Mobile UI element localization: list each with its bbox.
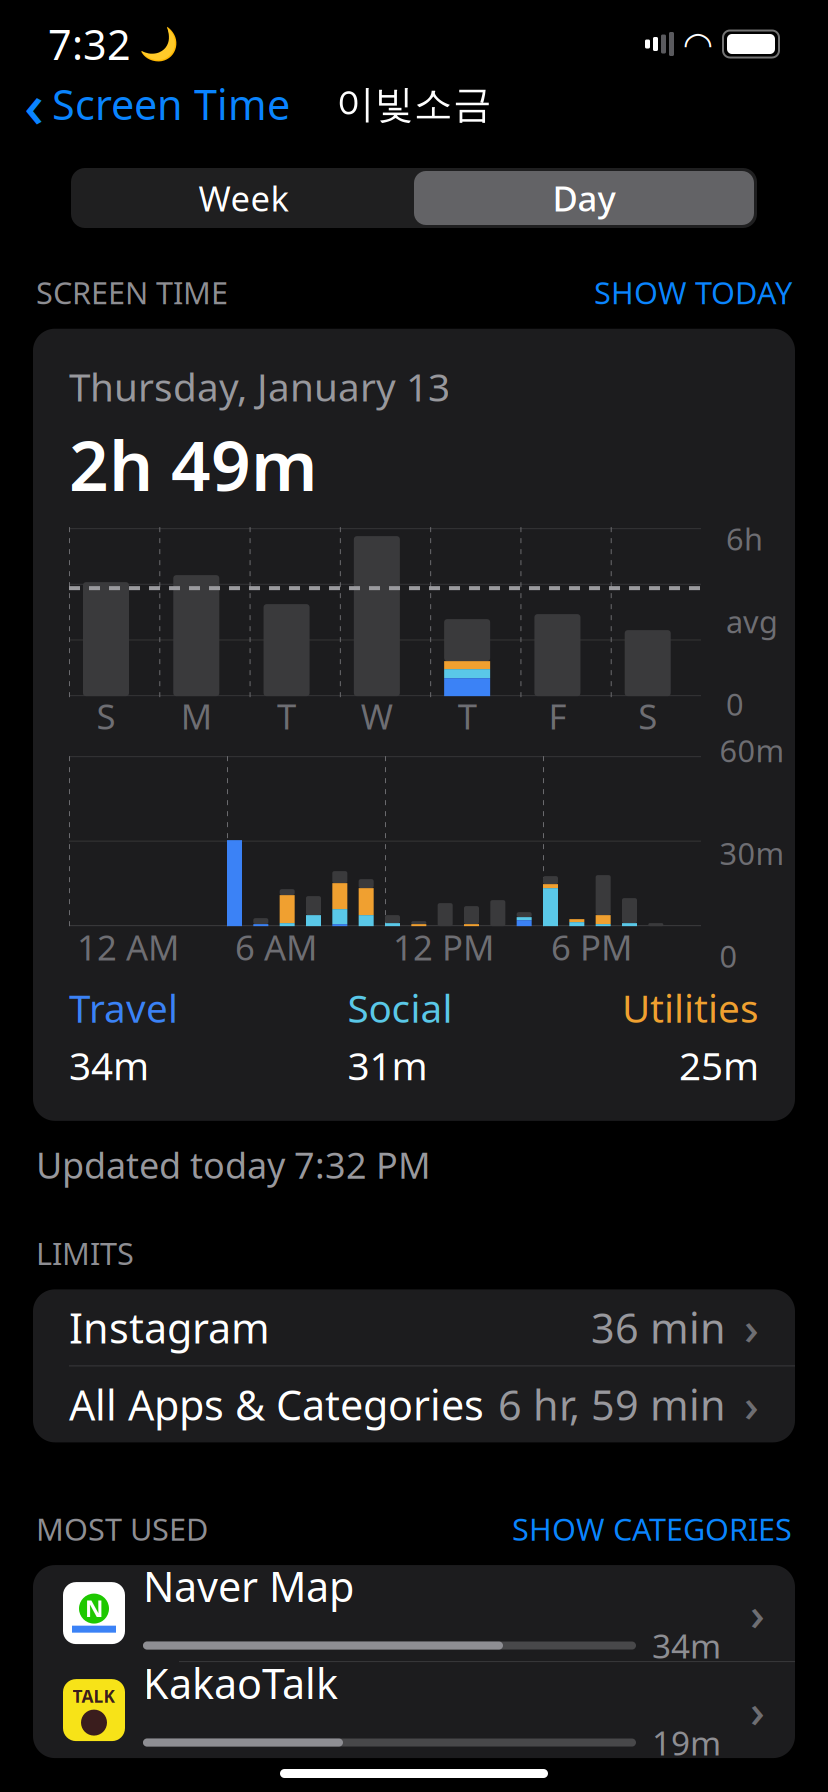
staticText: 25m — [679, 1039, 759, 1091]
staticText: 6 AM — [235, 924, 317, 970]
staticText: Screen Time — [52, 77, 290, 131]
staticText: 6 hr, 59 min — [498, 1377, 726, 1432]
button[interactable]: SHOW CATEGORIES — [512, 1508, 792, 1549]
staticText: 34m — [652, 1623, 721, 1668]
staticText: ‹ — [24, 63, 44, 145]
staticText: 이빛소금 — [336, 80, 492, 128]
button[interactable]: Day — [414, 171, 754, 225]
button[interactable]: SHOW TODAY — [594, 272, 792, 313]
staticText: 12 AM — [77, 924, 179, 970]
staticText: TALK — [72, 1685, 115, 1708]
staticText: All Apps & Categories — [69, 1377, 484, 1432]
staticText: 6 PM — [551, 924, 632, 970]
button[interactable]: All Apps & Categories — [33, 1366, 795, 1442]
staticText: › — [744, 1297, 759, 1357]
staticText: Updated today 7:32 PM — [36, 1141, 431, 1189]
staticText: T — [277, 693, 296, 739]
staticText: Day — [552, 175, 615, 221]
staticText: Thursday, January 13 — [69, 361, 450, 412]
staticText: 0 — [726, 684, 744, 724]
staticText: 30m — [719, 833, 784, 873]
staticText: avg — [726, 601, 778, 642]
staticText: LIMITS — [36, 1233, 134, 1273]
button[interactable]: Week — [74, 171, 414, 225]
staticText: 0 — [719, 935, 737, 976]
staticText: Naver Map — [143, 1558, 354, 1613]
staticText: F — [548, 693, 566, 739]
staticText: S — [638, 693, 657, 739]
staticText: SHOW TODAY — [594, 272, 792, 313]
staticText: ◠ — [684, 24, 711, 64]
staticText: 6h — [726, 518, 763, 559]
staticText: 34m — [69, 1039, 149, 1091]
staticText: N — [85, 1593, 103, 1624]
staticText: 2h 49m — [69, 418, 318, 510]
staticText: S — [96, 693, 115, 739]
staticText: W — [361, 693, 393, 739]
button[interactable]: N — [33, 1565, 795, 1661]
button[interactable]: TALK — [33, 1662, 795, 1758]
staticText: 12 PM — [393, 924, 494, 970]
staticText: Social — [347, 982, 452, 1033]
staticText: 31m — [347, 1039, 427, 1091]
staticText: › — [750, 1583, 765, 1643]
staticText: Instagram — [69, 1300, 270, 1355]
button[interactable]: Instagram — [33, 1289, 795, 1365]
staticText: Utilities — [622, 982, 759, 1033]
staticText: KakaoTalk — [143, 1655, 338, 1710]
staticText: › — [744, 1374, 759, 1434]
staticText: SCREEN TIME — [36, 272, 228, 313]
staticText: SHOW CATEGORIES — [512, 1508, 792, 1549]
staticText: M — [181, 693, 212, 739]
staticText: 7:32 — [48, 17, 131, 71]
staticText: › — [750, 1680, 765, 1740]
staticText: 60m — [719, 730, 784, 771]
staticText: Week — [198, 175, 289, 221]
staticText: MOST USED — [36, 1508, 208, 1549]
staticText: 🌙 — [139, 26, 179, 62]
staticText: T — [458, 693, 477, 739]
button[interactable]: ‹ — [0, 57, 290, 151]
staticText: 36 min — [591, 1300, 726, 1355]
staticText: 19m — [652, 1720, 721, 1765]
staticText: Travel — [69, 982, 178, 1033]
